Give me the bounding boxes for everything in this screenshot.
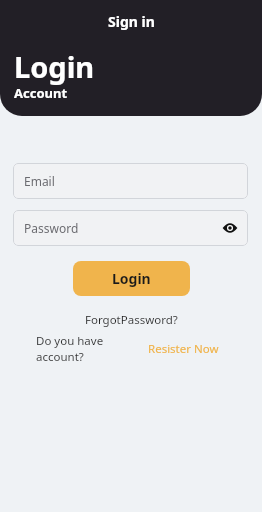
staticText: ForgotPassword? (85, 312, 178, 328)
staticText: Email (24, 173, 55, 189)
button[interactable]: Show password (220, 218, 240, 238)
button[interactable]: Email (13, 163, 248, 199)
staticText: Account (14, 84, 68, 102)
button[interactable]: Password (13, 210, 248, 246)
button[interactable]: Resister Now (148, 341, 219, 357)
staticText: Login (112, 269, 151, 288)
button[interactable]: ForgotPassword? (83, 310, 180, 330)
staticText: Sign in (108, 12, 155, 31)
staticText: Do you have (36, 333, 104, 349)
staticText: Resister Now (148, 341, 219, 357)
button[interactable]: Do you have (36, 333, 104, 365)
staticText: account? (36, 349, 84, 365)
button[interactable]: Login (73, 261, 190, 296)
staticText: Password (24, 220, 79, 236)
staticText: Login (14, 47, 95, 86)
